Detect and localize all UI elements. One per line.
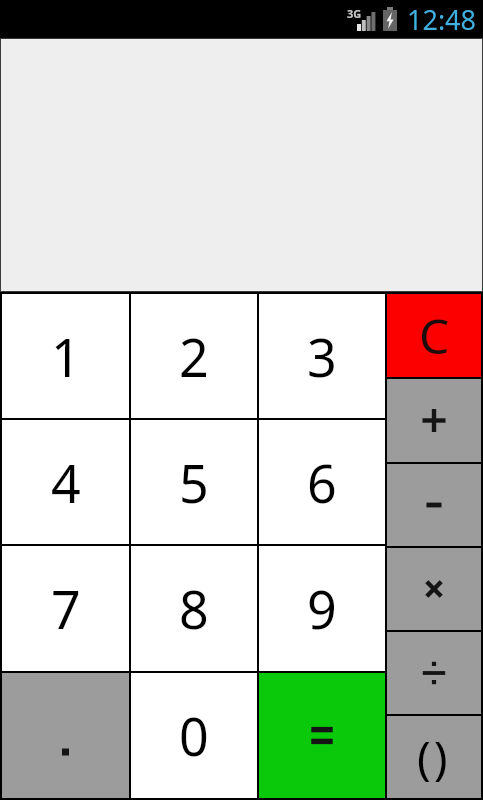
staticText: 3	[307, 321, 337, 392]
button[interactable]: 3	[259, 294, 385, 418]
button[interactable]: 0	[131, 673, 257, 798]
button[interactable]: 4	[2, 420, 129, 544]
button[interactable]	[2, 673, 129, 798]
staticText: 5	[179, 447, 209, 518]
button[interactable]: 5	[131, 420, 257, 544]
staticText: 6	[307, 447, 337, 518]
button[interactable]	[0, 38, 483, 292]
button[interactable]: 8	[131, 546, 257, 671]
button[interactable]	[387, 379, 481, 462]
staticText: 12:48	[407, 1, 477, 38]
button[interactable]: 1	[2, 294, 129, 418]
staticText: 4	[51, 447, 81, 518]
staticText: 3G	[347, 6, 362, 21]
staticText: 8	[179, 573, 209, 644]
button[interactable]	[387, 548, 481, 630]
staticText: 2	[179, 321, 209, 392]
staticText: 9	[307, 573, 337, 644]
staticText: 1	[51, 321, 81, 392]
staticText: 0	[179, 700, 209, 771]
staticText: C	[419, 303, 450, 368]
button[interactable]	[387, 632, 481, 714]
button[interactable]: 7	[2, 546, 129, 671]
button[interactable]: C	[387, 294, 481, 377]
button[interactable]: ()	[387, 716, 481, 798]
staticText: ()	[417, 726, 451, 789]
button[interactable]	[259, 673, 385, 798]
staticText: 7	[51, 573, 81, 644]
button[interactable]: 6	[259, 420, 385, 544]
button[interactable]	[387, 464, 481, 546]
button[interactable]: 2	[131, 294, 257, 418]
button[interactable]: 9	[259, 546, 385, 671]
